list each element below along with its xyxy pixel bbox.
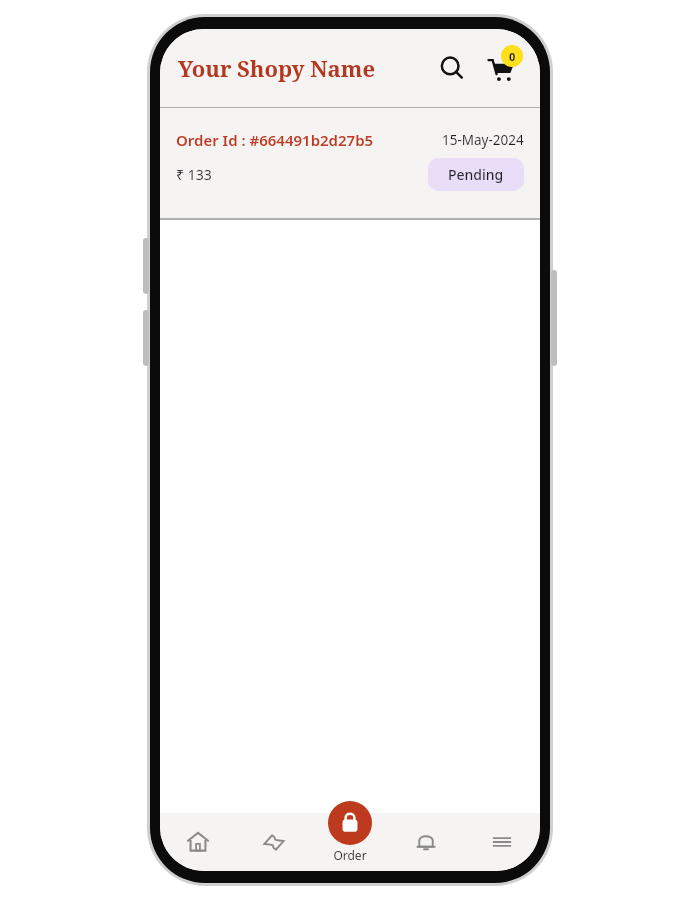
button[interactable]: Menu [464,813,540,871]
button[interactable]: Offers [236,813,312,871]
staticText: Order [333,847,367,863]
button[interactable]: Home [160,813,236,871]
button[interactable]: Notifications [388,813,464,871]
staticText: 0 [509,49,516,64]
staticText: 15-May-2024 [442,131,524,149]
staticText: Pending [448,165,504,184]
staticText: Your Shopy Name [178,53,376,83]
staticText: Order Id : #664491b2d27b5 [176,130,374,150]
staticText: ₹ 133 [176,165,212,184]
button[interactable]: Pending [428,158,524,191]
button[interactable]: Order Id : #664491b2d27b5 [160,108,540,218]
button[interactable]: Search [432,48,472,88]
button[interactable]: Cart [478,45,524,91]
button[interactable]: Order [328,801,372,863]
